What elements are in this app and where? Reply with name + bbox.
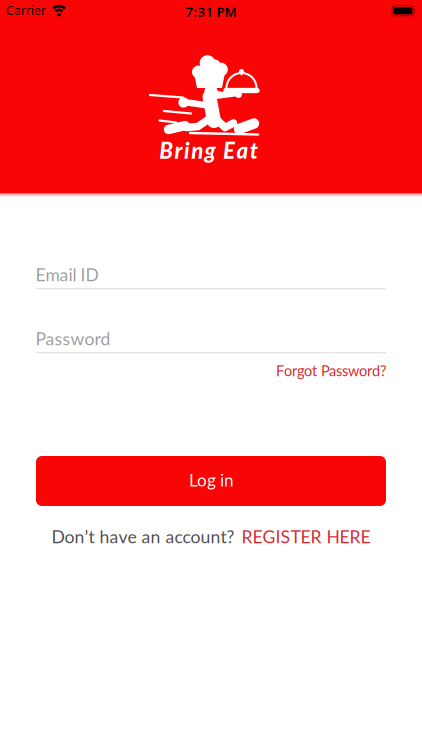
button[interactable]: Password <box>34 328 384 354</box>
button[interactable]: REGISTER HERE <box>241 526 370 547</box>
staticText: Forgot Password? <box>276 362 386 379</box>
staticText: Log in <box>189 470 233 490</box>
staticText: Email ID <box>35 264 98 285</box>
staticText: Carrier <box>6 2 46 18</box>
button[interactable]: Log in <box>36 456 386 506</box>
staticText: Password <box>35 328 110 349</box>
staticText: REGISTER HERE <box>241 526 370 547</box>
button[interactable]: Forgot Password? <box>276 362 386 379</box>
staticText: 7:31 PM <box>185 3 236 20</box>
button[interactable]: Email ID <box>34 264 384 290</box>
staticText: Don’t have an account? <box>51 526 234 547</box>
staticText: Bring Eat <box>159 137 258 163</box>
